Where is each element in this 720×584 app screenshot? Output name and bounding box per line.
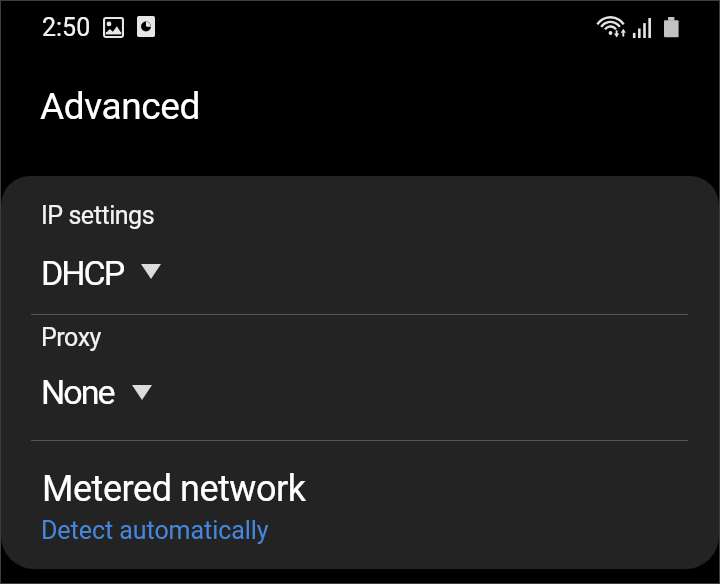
staticText: Metered network xyxy=(42,468,306,510)
staticText: DHCP xyxy=(41,253,124,293)
staticText: 2:50 xyxy=(42,13,91,42)
other: Battery xyxy=(664,17,680,38)
button[interactable]: Proxy xyxy=(1,316,719,436)
staticText: None xyxy=(41,372,114,412)
button[interactable]: IP settings xyxy=(1,190,719,308)
staticText: IP settings xyxy=(41,201,155,230)
other: Gallery notification xyxy=(103,17,124,38)
other: Clock notification xyxy=(137,16,155,37)
other: Wi-Fi connected xyxy=(598,17,627,39)
staticText: Proxy xyxy=(41,323,101,352)
other: Mobile signal xyxy=(632,17,652,38)
staticText: Detect automatically xyxy=(41,516,269,545)
staticText: Advanced xyxy=(40,85,200,128)
button[interactable]: Metered network xyxy=(1,462,719,552)
